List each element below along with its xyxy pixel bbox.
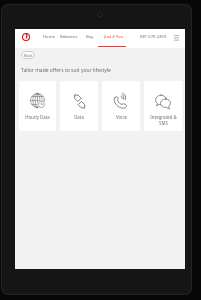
staticText: Back <box>24 53 33 58</box>
button[interactable]: Data <box>60 81 98 131</box>
button[interactable]: Voice <box>102 81 140 131</box>
staticText: 081 670 2269 <box>140 34 167 40</box>
button[interactable]: Home <box>43 29 55 48</box>
staticText: Hourly Data <box>25 114 50 120</box>
staticText: Home <box>43 34 55 40</box>
staticText: Just 4 You <box>104 34 124 40</box>
button[interactable]: Back <box>21 51 35 59</box>
button[interactable]: Buy <box>86 29 94 48</box>
button[interactable]: Vodafone <box>22 33 30 41</box>
button[interactable]: Balances <box>60 29 78 48</box>
staticText: Data <box>74 114 84 120</box>
button[interactable]: Hourly Data <box>19 81 56 131</box>
staticText: Voice <box>116 114 127 120</box>
staticText: Integrated & SMS <box>150 114 177 126</box>
button[interactable]: Just 4 You <box>104 29 124 48</box>
staticText: Balances <box>60 34 78 40</box>
staticText: Buy <box>86 34 94 40</box>
staticText: Tailor made offers to suit your lifestyl… <box>21 67 111 74</box>
button[interactable]: Menu <box>173 34 179 40</box>
button[interactable]: Integrated & SMS <box>144 81 182 131</box>
